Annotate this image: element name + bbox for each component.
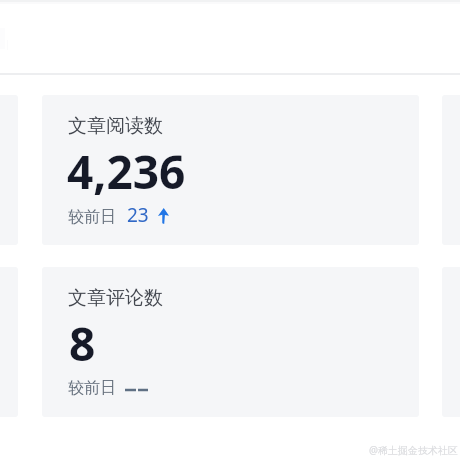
button[interactable]: 文章评论数 — [42, 267, 419, 417]
staticText: @稀土掘金技术社区 — [369, 443, 458, 457]
staticText: 4,236 — [67, 140, 186, 203]
staticText: 23 — [127, 202, 149, 228]
staticText: 8 — [69, 312, 96, 375]
staticText: 较前日 — [68, 378, 116, 398]
staticText: 较前日 — [68, 207, 116, 227]
other: Increased by 23 — [157, 208, 169, 224]
button[interactable]: 文章阅读数 — [42, 95, 419, 245]
staticText: 文章评论数 — [68, 286, 163, 310]
other: No change — [125, 380, 151, 396]
staticText: 文章阅读数 — [68, 114, 163, 138]
